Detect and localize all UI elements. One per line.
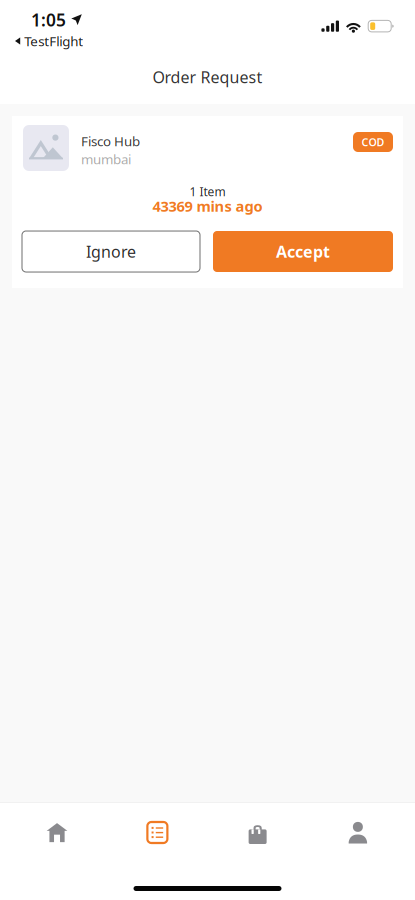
staticText: mumbai (81, 150, 131, 168)
button[interactable]: Ignore (22, 231, 200, 272)
staticText: Accept (276, 241, 330, 262)
staticText: 43369 mins ago (152, 196, 262, 216)
staticText: Ignore (86, 241, 136, 262)
staticText: 1 Item (189, 183, 225, 199)
staticText: COD (361, 135, 384, 149)
staticText: TestFlight (24, 32, 83, 50)
button[interactable]: Profile (308, 808, 408, 857)
button[interactable]: Home (7, 808, 107, 857)
button[interactable]: Accept (213, 231, 393, 272)
staticText: Order Request (152, 66, 262, 88)
staticText: Fisco Hub (81, 132, 140, 150)
button[interactable]: Orders (107, 808, 207, 857)
button[interactable]: Shop (207, 808, 308, 857)
staticText: 1:05 (31, 8, 66, 31)
